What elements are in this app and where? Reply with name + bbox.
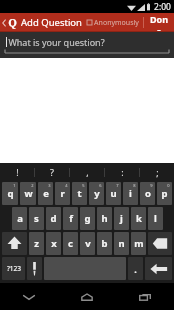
button[interactable]: d xyxy=(46,207,61,230)
staticText: a xyxy=(17,212,23,225)
staticText: ; xyxy=(156,166,159,178)
staticText: What is your question? xyxy=(8,36,105,48)
staticText: 6 xyxy=(99,183,102,188)
button[interactable]: What is your question? xyxy=(0,32,174,58)
button[interactable]: g xyxy=(80,207,95,230)
button[interactable]: Voice input xyxy=(27,257,42,280)
staticText: i xyxy=(129,187,132,200)
staticText: 2 xyxy=(31,183,34,188)
staticText: 1 xyxy=(13,183,16,188)
button[interactable]: q xyxy=(2,182,18,205)
button[interactable]: Backspace xyxy=(148,232,172,255)
button[interactable]: y xyxy=(89,182,104,205)
button[interactable]: f xyxy=(63,207,78,230)
button[interactable]: ; xyxy=(140,163,174,181)
staticText: e xyxy=(43,187,49,200)
staticText: o xyxy=(145,187,151,200)
button[interactable]: s xyxy=(29,207,44,230)
button[interactable]: r xyxy=(55,182,70,205)
button[interactable]: ? xyxy=(35,163,69,181)
button[interactable]: p xyxy=(157,182,172,205)
staticText: ?123 xyxy=(7,264,21,273)
button[interactable]: ?123 xyxy=(2,257,25,280)
staticText: 9 xyxy=(150,183,153,188)
other: Back xyxy=(2,19,6,27)
button[interactable]: Shift xyxy=(2,232,27,255)
staticText: m xyxy=(134,237,144,250)
staticText: Anonymously xyxy=(94,18,139,28)
button[interactable]: : xyxy=(105,163,139,181)
staticText: 5 xyxy=(82,183,85,188)
button[interactable]: a xyxy=(12,207,27,230)
staticText: q xyxy=(7,187,14,200)
staticText: 3 xyxy=(48,183,51,188)
staticText: x xyxy=(51,237,57,250)
button[interactable]: Anonymously xyxy=(85,13,141,32)
button[interactable]: Back xyxy=(0,13,85,32)
staticText: ? xyxy=(50,166,54,178)
staticText: t xyxy=(77,187,82,200)
staticText: Add Question xyxy=(21,16,82,29)
button[interactable]: Back xyxy=(0,283,58,310)
button[interactable]: . xyxy=(128,257,143,280)
button[interactable]: j xyxy=(114,207,129,230)
staticText: h xyxy=(101,212,108,225)
button[interactable]: b xyxy=(97,232,112,255)
button[interactable]: n xyxy=(114,232,129,255)
button[interactable]: c xyxy=(63,232,78,255)
staticText: j xyxy=(120,212,123,225)
button[interactable]: w xyxy=(20,182,36,205)
staticText: f xyxy=(69,212,73,225)
staticText: s xyxy=(34,212,39,225)
button[interactable]: o xyxy=(140,182,155,205)
staticText: v xyxy=(85,237,91,250)
staticText: 8 xyxy=(133,183,136,188)
staticText: k xyxy=(136,212,142,225)
staticText: Q xyxy=(8,15,17,30)
button[interactable]: k xyxy=(131,207,146,230)
staticText: n xyxy=(118,237,125,250)
button[interactable]: e xyxy=(38,182,53,205)
staticText: c xyxy=(68,237,73,250)
button[interactable]: Home xyxy=(58,283,116,310)
button[interactable]: x xyxy=(46,232,61,255)
button[interactable]: Enter xyxy=(145,257,172,280)
staticText: Done xyxy=(148,13,170,32)
button[interactable]: , xyxy=(70,163,104,181)
staticText: 2:00 xyxy=(154,1,171,13)
staticText: ! xyxy=(16,166,19,178)
staticText: u xyxy=(110,187,117,200)
staticText: . xyxy=(134,263,137,275)
button[interactable]: t xyxy=(72,182,87,205)
button[interactable]: v xyxy=(80,232,95,255)
button[interactable]: ! xyxy=(0,163,34,181)
staticText: y xyxy=(94,187,100,200)
staticText: : xyxy=(121,166,124,178)
button[interactable]: h xyxy=(97,207,112,230)
staticText: 0 xyxy=(167,183,170,188)
button[interactable]: z xyxy=(29,232,44,255)
staticText: 7 xyxy=(116,183,119,188)
button[interactable]: Done xyxy=(144,13,174,32)
staticText: 4 xyxy=(65,183,68,188)
staticText: p xyxy=(161,187,168,200)
button[interactable]: m xyxy=(131,232,146,255)
staticText: z xyxy=(34,237,39,250)
staticText: d xyxy=(50,212,57,225)
button[interactable]: i xyxy=(123,182,138,205)
staticText: g xyxy=(84,212,91,225)
staticText: r xyxy=(60,187,65,200)
button[interactable]: u xyxy=(106,182,121,205)
button[interactable]: Recents xyxy=(116,283,174,310)
staticText: b xyxy=(101,237,108,250)
staticText: l xyxy=(154,212,157,225)
button[interactable]: l xyxy=(148,207,163,230)
staticText: w xyxy=(24,187,33,200)
staticText: , xyxy=(86,166,89,178)
